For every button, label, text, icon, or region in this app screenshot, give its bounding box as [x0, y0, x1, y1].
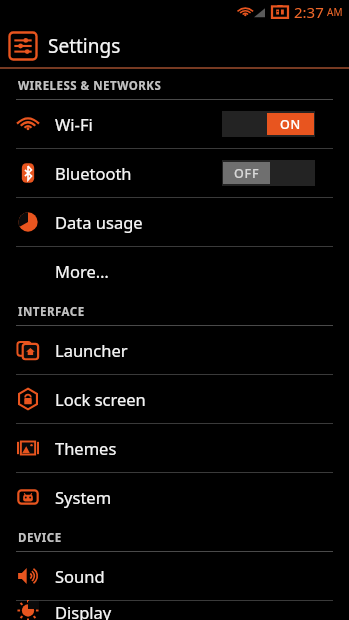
staticText: WIRELESS & NETWORKS	[18, 78, 162, 94]
button[interactable]: Launcher	[0, 326, 349, 374]
staticText: Themes	[55, 437, 117, 459]
staticText: Wi-Fi	[55, 113, 93, 135]
staticText: 2:37	[294, 2, 324, 22]
staticText: More…	[55, 260, 109, 282]
button[interactable]: Settings	[0, 24, 349, 67]
staticText: DEVICE	[18, 530, 62, 546]
staticText: Data usage	[55, 211, 143, 233]
staticText: Launcher	[55, 339, 128, 361]
button[interactable]: Display	[0, 601, 349, 620]
staticText: AM	[327, 5, 343, 19]
staticText: System	[55, 486, 112, 508]
staticText: OFF	[234, 165, 260, 182]
staticText: Settings	[48, 33, 121, 59]
staticText: Display	[55, 601, 112, 620]
button[interactable]: Turn on	[222, 160, 315, 186]
button[interactable]: Lock screen	[0, 375, 349, 423]
button[interactable]: Themes	[0, 424, 349, 472]
button[interactable]: System	[0, 473, 349, 521]
staticText: Lock screen	[55, 388, 146, 410]
button[interactable]: Bluetooth	[0, 149, 349, 197]
button[interactable]: Data usage	[0, 198, 349, 246]
button[interactable]: Wi-Fi	[0, 100, 349, 148]
button[interactable]: More…	[0, 247, 349, 295]
button[interactable]: Sound	[0, 552, 349, 600]
staticText: ON	[280, 116, 302, 133]
staticText: Sound	[55, 565, 105, 587]
staticText: INTERFACE	[18, 304, 85, 320]
button[interactable]: Turn off	[222, 111, 315, 137]
staticText: Bluetooth	[55, 162, 132, 184]
